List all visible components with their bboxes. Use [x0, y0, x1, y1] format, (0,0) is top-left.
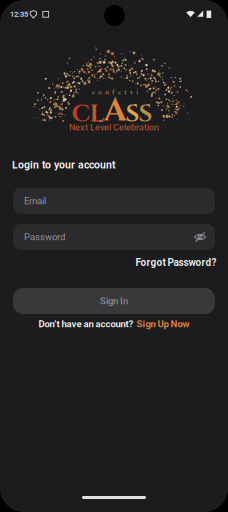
staticText: Next Level Celebration	[69, 122, 159, 133]
staticText: Don't have an account?	[38, 318, 133, 330]
button[interactable]: Don't have an account?	[38, 318, 189, 330]
staticText: Forgot Password?	[135, 257, 216, 268]
staticText: 12:35	[10, 10, 28, 19]
staticText: A	[103, 88, 126, 132]
staticText: S	[138, 98, 152, 131]
button[interactable]: Forgot Password?	[135, 257, 216, 268]
staticText: c o n f e t t i	[92, 86, 138, 96]
staticText: Password	[24, 231, 65, 243]
button[interactable]: Password	[13, 224, 215, 250]
staticText: L	[89, 98, 104, 131]
button[interactable]	[193, 230, 207, 244]
staticText: S	[125, 98, 139, 131]
staticText: Sign Up Now	[136, 318, 189, 330]
button[interactable]: Email	[13, 188, 215, 214]
staticText: C	[71, 98, 90, 131]
staticText: Login to your account	[12, 159, 116, 171]
staticText: Email	[24, 195, 46, 207]
staticText: Sign In	[100, 295, 128, 307]
button[interactable]: Sign In	[13, 288, 215, 314]
